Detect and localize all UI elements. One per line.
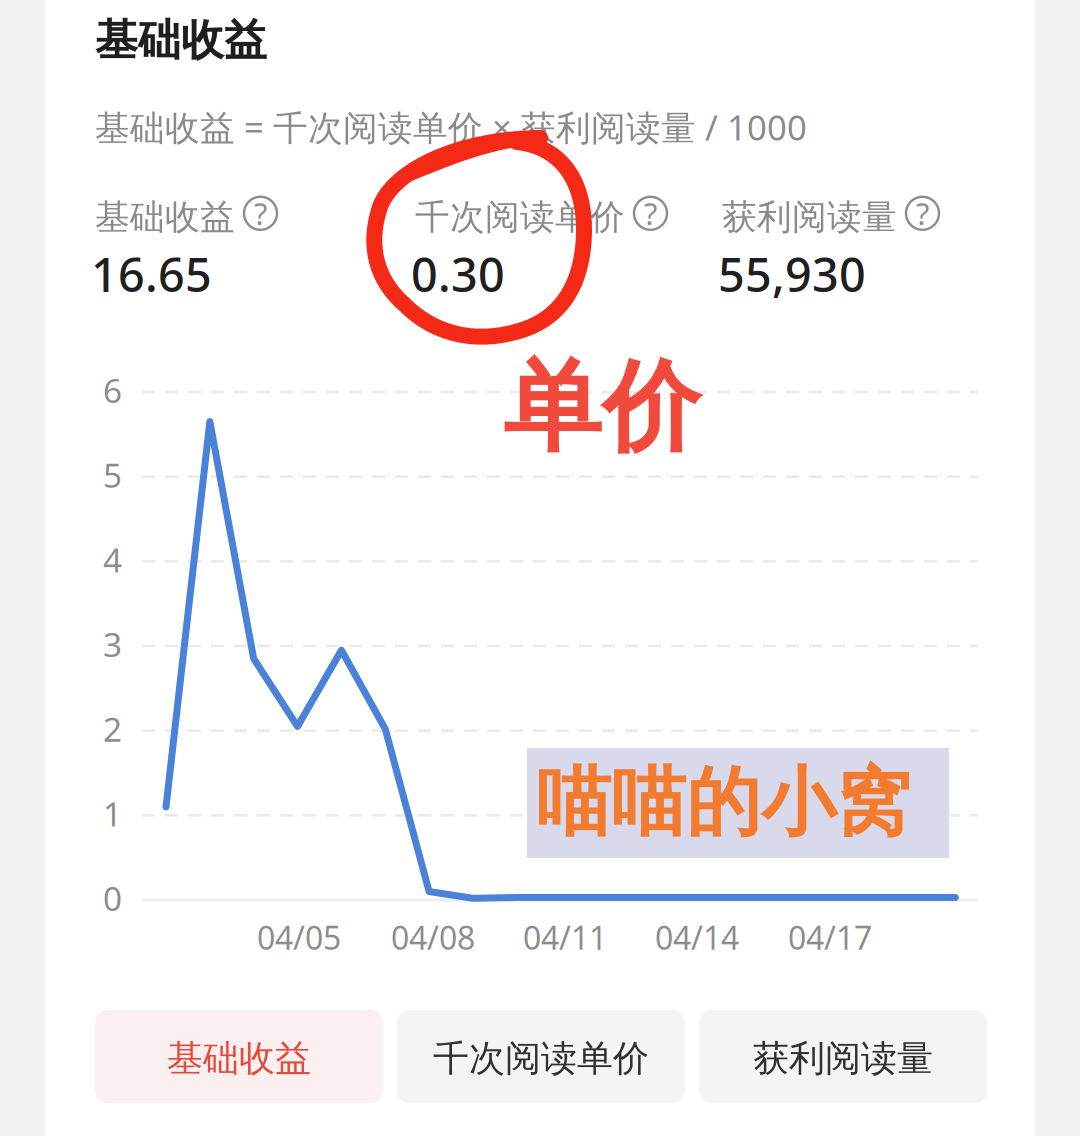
- staticText: 3: [103, 622, 122, 666]
- button[interactable]: 关于千次阅读单价: [634, 197, 667, 230]
- staticText: 单价: [503, 347, 701, 468]
- staticText: 获利阅读量: [722, 196, 897, 239]
- staticText: 55,930: [718, 243, 866, 305]
- staticText: 千次阅读单价: [415, 196, 625, 239]
- staticText: 基础收益: [95, 196, 235, 239]
- staticText: 04/08: [391, 916, 475, 958]
- staticText: 04/05: [257, 916, 341, 958]
- staticText: 04/17: [788, 916, 872, 958]
- button[interactable]: 获利阅读量: [699, 1010, 987, 1103]
- staticText: 获利阅读量: [753, 1036, 933, 1081]
- staticText: 4: [103, 537, 122, 582]
- staticText: 04/14: [655, 916, 739, 958]
- staticText: 基础收益: [167, 1036, 311, 1081]
- staticText: ?: [916, 193, 929, 234]
- staticText: 5: [103, 453, 122, 497]
- staticText: 基础收益: [95, 14, 267, 66]
- button[interactable]: 关于基础收益: [244, 197, 277, 230]
- staticText: 16.65: [91, 243, 212, 305]
- staticText: 2: [103, 707, 122, 751]
- staticText: ?: [254, 193, 267, 234]
- button[interactable]: 基础收益: [95, 1010, 383, 1103]
- staticText: 喵喵的小窝: [536, 757, 911, 849]
- staticText: ?: [644, 193, 657, 234]
- button[interactable]: 关于获利阅读量: [906, 197, 939, 230]
- staticText: 0.30: [411, 243, 505, 305]
- staticText: 1: [103, 791, 122, 836]
- staticText: 6: [103, 368, 122, 412]
- button[interactable]: 千次阅读单价: [397, 1010, 685, 1103]
- staticText: 0: [103, 876, 122, 920]
- staticText: 04/11: [523, 916, 607, 958]
- staticText: 基础收益 = 千次阅读单价 × 获利阅读量 / 1000: [95, 104, 807, 150]
- staticText: 千次阅读单价: [433, 1036, 649, 1081]
